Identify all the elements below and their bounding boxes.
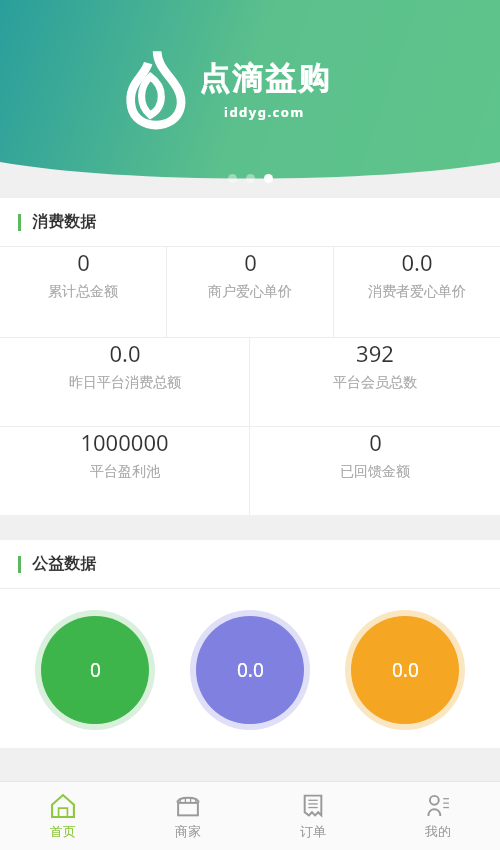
staticText: 0.0 <box>109 338 141 368</box>
staticText: 消费数据 <box>32 212 96 232</box>
staticText: 已回馈金额 <box>340 463 410 481</box>
staticText: 首页 <box>50 823 76 839</box>
button[interactable]: 0.0 <box>334 247 500 301</box>
button[interactable]: 0.0 <box>345 610 465 730</box>
staticText: iddyg.com <box>224 103 305 121</box>
staticText: 我的 <box>425 823 451 839</box>
button[interactable]: 订单 <box>250 793 375 839</box>
button[interactable]: 0 <box>167 247 333 301</box>
staticText: 累计总金额 <box>48 283 118 301</box>
button[interactable]: 0 <box>35 610 155 730</box>
staticText: 1000000 <box>80 427 169 457</box>
staticText: 0 <box>90 657 101 683</box>
staticText: 平台会员总数 <box>333 374 417 392</box>
button[interactable]: 0.0 <box>0 338 249 392</box>
button[interactable]: 1000000 <box>0 427 249 481</box>
staticText: 订单 <box>300 823 326 839</box>
button[interactable]: 0.0 <box>190 610 310 730</box>
staticText: 消费者爱心单价 <box>368 283 466 301</box>
staticText: 0 <box>77 247 90 277</box>
staticText: 0 <box>369 427 382 457</box>
button[interactable]: 392 <box>250 338 500 392</box>
button[interactable]: 商家 <box>125 793 250 839</box>
staticText: 点滴益购 <box>198 59 330 98</box>
staticText: 商家 <box>175 823 201 839</box>
staticText: 392 <box>356 338 394 368</box>
staticText: 0.0 <box>401 247 433 277</box>
button[interactable]: 我的 <box>375 793 500 839</box>
staticText: 0.0 <box>392 657 419 683</box>
staticText: 昨日平台消费总额 <box>69 374 181 392</box>
staticText: 0 <box>244 247 257 277</box>
staticText: 商户爱心单价 <box>208 283 292 301</box>
staticText: 公益数据 <box>32 554 96 574</box>
button[interactable]: 首页 <box>0 793 125 839</box>
button[interactable]: 0 <box>250 427 500 481</box>
staticText: 平台盈利池 <box>90 463 160 481</box>
staticText: 0.0 <box>237 657 264 683</box>
button[interactable]: 0 <box>0 247 166 301</box>
